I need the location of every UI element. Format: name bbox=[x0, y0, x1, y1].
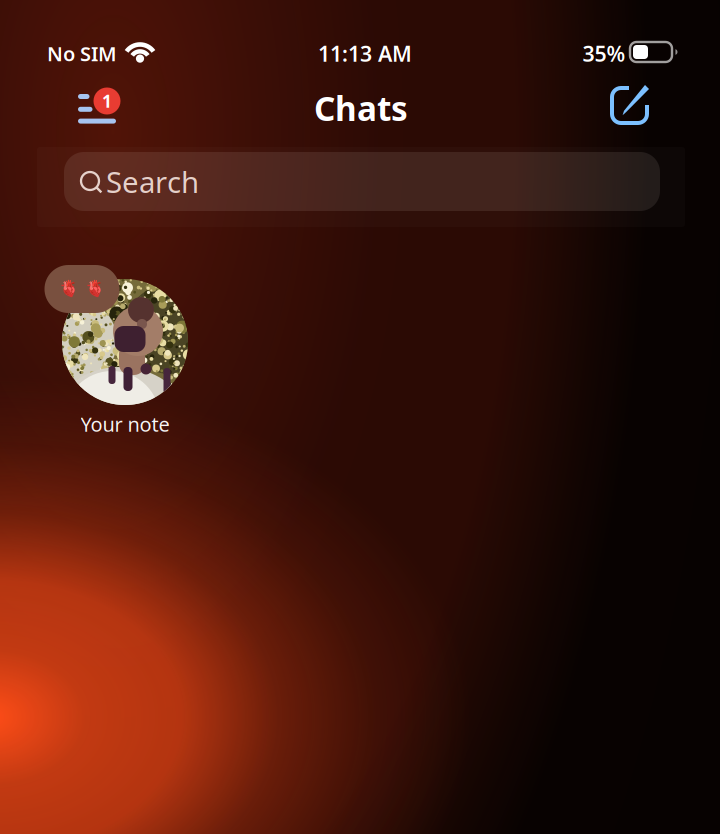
staticText: 35% bbox=[582, 39, 625, 68]
staticText: 1 bbox=[102, 89, 112, 112]
staticText: 🫀 bbox=[85, 280, 105, 298]
button[interactable]: New message bbox=[602, 79, 662, 135]
button[interactable]: Search bbox=[64, 152, 660, 211]
staticText: 🫀 bbox=[59, 280, 79, 298]
staticText: Chats bbox=[314, 86, 408, 130]
staticText: 11:13 AM bbox=[318, 39, 412, 68]
staticText: No SIM bbox=[47, 40, 117, 67]
button[interactable]: Message requests, 1 unread bbox=[62, 80, 142, 136]
staticText: Search bbox=[106, 162, 199, 201]
staticText: Your note bbox=[80, 411, 169, 437]
